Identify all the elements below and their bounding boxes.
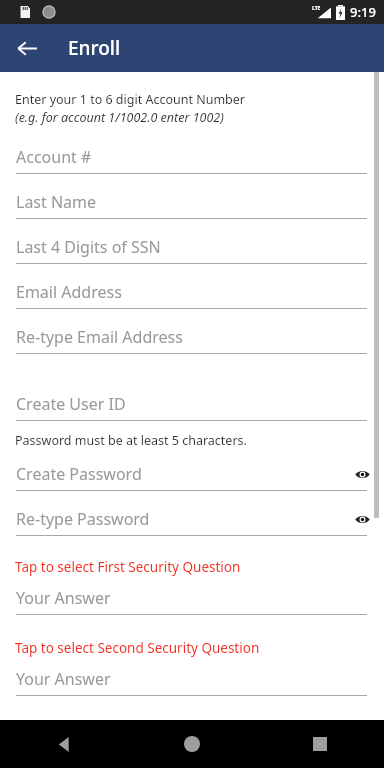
- button[interactable]: Back: [0, 720, 128, 768]
- button[interactable]: Re-type Email Address: [0, 317, 384, 362]
- button[interactable]: Back: [8, 29, 46, 67]
- button[interactable]: Last Name: [0, 182, 384, 227]
- button[interactable]: Re-type Password: [0, 499, 384, 544]
- staticText: Your Answer: [16, 587, 111, 609]
- staticText: LTE: [312, 5, 321, 12]
- staticText: Account #: [16, 146, 92, 168]
- button[interactable]: Account #: [0, 137, 384, 182]
- staticText: Create Password: [16, 463, 142, 485]
- button[interactable]: Recents: [256, 720, 384, 768]
- staticText: Tap to select First Security Question: [15, 558, 241, 576]
- staticText: Last Name: [16, 191, 97, 213]
- button[interactable]: Show password: [350, 507, 374, 531]
- staticText: Last 4 Digits of SSN: [16, 236, 161, 258]
- staticText: Tap to select Second Security Question: [15, 639, 260, 657]
- button[interactable]: Your Answer: [0, 578, 384, 623]
- button[interactable]: Home: [128, 720, 256, 768]
- button[interactable]: Create Password: [0, 454, 384, 499]
- button[interactable]: Tap to select First Security Question: [0, 556, 384, 578]
- staticText: Email Address: [16, 281, 122, 303]
- button[interactable]: Create User ID: [0, 384, 384, 429]
- staticText: Enroll: [68, 35, 121, 61]
- staticText: Re-type Password: [16, 508, 150, 530]
- staticText: Your Answer: [16, 668, 111, 690]
- button[interactable]: Show password: [350, 462, 374, 486]
- staticText: Re-type Email Address: [16, 326, 183, 348]
- button[interactable]: Last 4 Digits of SSN: [0, 227, 384, 272]
- staticText: Create User ID: [16, 393, 126, 415]
- button[interactable]: Email Address: [0, 272, 384, 317]
- staticText: 9:19: [350, 3, 376, 21]
- staticText: (e.g. for account 1/1002.0 enter 1002): [15, 109, 224, 126]
- button[interactable]: Tap to select Second Security Question: [0, 637, 384, 659]
- button[interactable]: Your Answer: [0, 659, 384, 704]
- staticText: Enter your 1 to 6 digit Account Number: [15, 91, 246, 108]
- staticText: Password must be at least 5 characters.: [15, 432, 247, 449]
